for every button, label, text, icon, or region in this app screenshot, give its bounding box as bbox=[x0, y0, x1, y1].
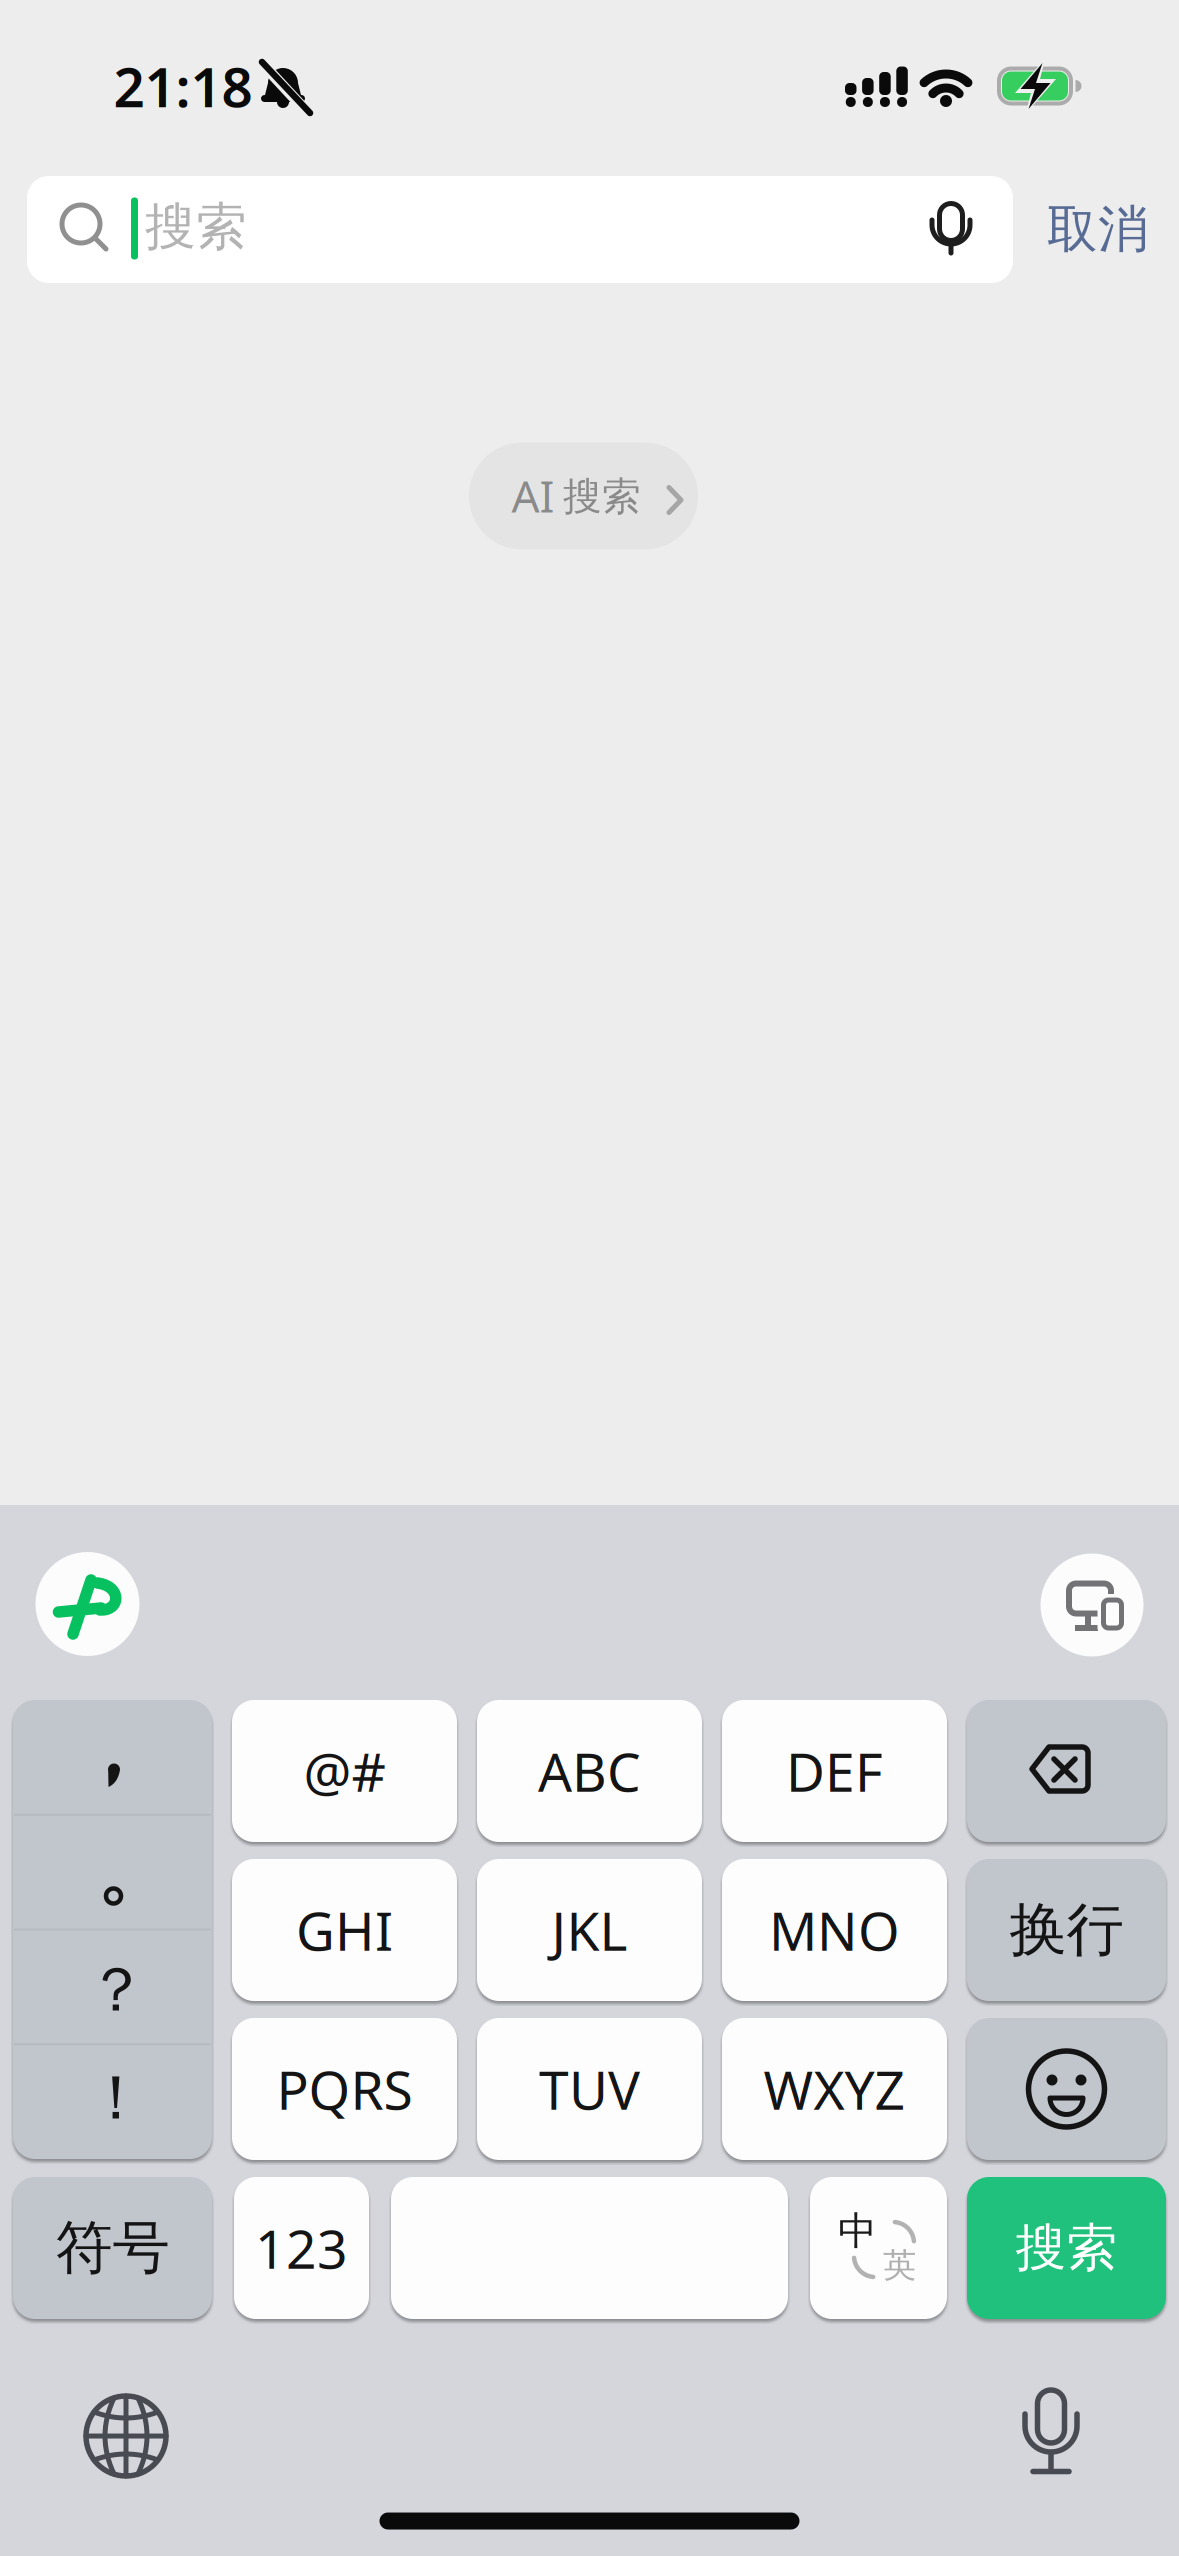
button[interactable]: GHI bbox=[232, 1859, 457, 2001]
button[interactable]: 中英切换 bbox=[810, 2177, 947, 2319]
staticText: ！ bbox=[85, 2060, 146, 2136]
button[interactable]: 微信键盘 bbox=[35, 1552, 139, 1656]
button[interactable]: 切换输入法 bbox=[71, 2381, 181, 2491]
button[interactable]: 取消 bbox=[1023, 176, 1173, 283]
staticText: 搜索 bbox=[563, 473, 641, 520]
button[interactable]: 空格 bbox=[391, 2177, 788, 2319]
staticText: 中 bbox=[838, 2207, 877, 2255]
staticText: @# bbox=[303, 1736, 385, 1806]
staticText: 英 bbox=[883, 2245, 916, 2286]
button[interactable]: PQRS bbox=[232, 2018, 457, 2160]
staticText: WXYZ bbox=[763, 2054, 905, 2124]
button[interactable]: @# bbox=[232, 1700, 457, 1842]
staticText: 搜索 bbox=[1015, 2217, 1117, 2279]
button[interactable]: 符号 bbox=[13, 2177, 212, 2319]
button[interactable]: 语音搜索 bbox=[906, 176, 996, 283]
button[interactable]: ABC bbox=[477, 1700, 702, 1842]
button[interactable]: TUV bbox=[477, 2018, 702, 2160]
button[interactable]: 换行 bbox=[967, 1859, 1166, 2001]
staticText: AI bbox=[511, 466, 554, 525]
staticText: 21:18 bbox=[113, 50, 252, 122]
button[interactable]: 表情 bbox=[967, 2018, 1166, 2160]
button[interactable]: AI bbox=[469, 442, 698, 549]
button[interactable]: 删除 bbox=[967, 1700, 1166, 1842]
staticText: TUV bbox=[539, 2054, 640, 2124]
button[interactable]: 语音输入 bbox=[996, 2381, 1106, 2491]
staticText: 换行 bbox=[1009, 1895, 1123, 1965]
staticText: ABC bbox=[538, 1736, 641, 1806]
staticText: MNO bbox=[769, 1895, 900, 1965]
staticText: 123 bbox=[255, 2213, 348, 2283]
button[interactable]: DEF bbox=[722, 1700, 947, 1842]
button[interactable]: 标点 bbox=[13, 1700, 212, 2159]
button[interactable]: 搜索 bbox=[967, 2177, 1166, 2319]
staticText: 搜索 bbox=[145, 196, 247, 258]
button[interactable]: JKL bbox=[477, 1859, 702, 2001]
staticText: GHI bbox=[296, 1895, 393, 1965]
staticText: 取消 bbox=[1047, 198, 1149, 261]
button[interactable]: 跨设备输入 bbox=[1040, 1553, 1143, 1656]
staticText: 符号 bbox=[55, 2213, 169, 2283]
button[interactable]: WXYZ bbox=[722, 2018, 947, 2160]
button[interactable]: MNO bbox=[722, 1859, 947, 2001]
staticText: ？ bbox=[86, 1952, 147, 2028]
button[interactable]: 123 bbox=[234, 2177, 369, 2319]
staticText: DEF bbox=[786, 1736, 883, 1806]
staticText: JKL bbox=[551, 1895, 627, 1965]
staticText: PQRS bbox=[276, 2054, 412, 2124]
